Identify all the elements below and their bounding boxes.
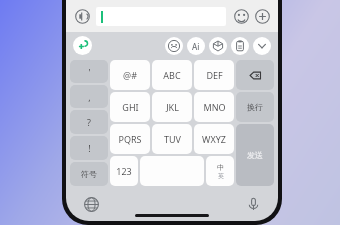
button[interactable]: 符号 bbox=[70, 162, 108, 186]
staticText: 英 bbox=[218, 172, 224, 180]
button[interactable]: @# bbox=[110, 60, 150, 90]
button[interactable]: Chinese English toggle bbox=[206, 156, 234, 186]
button[interactable]: Voice bbox=[74, 8, 90, 24]
button[interactable]: 3D bbox=[209, 37, 227, 55]
button[interactable]: ? bbox=[70, 110, 108, 134]
button[interactable]: Stickers bbox=[165, 37, 183, 55]
button[interactable]: Ai bbox=[187, 37, 205, 55]
staticText: TUV bbox=[164, 133, 181, 145]
staticText: ? bbox=[87, 116, 91, 128]
button[interactable]: , bbox=[70, 85, 108, 108]
staticText: DEF bbox=[206, 69, 223, 81]
staticText: Ai bbox=[192, 41, 200, 52]
staticText: PQRS bbox=[118, 133, 142, 145]
staticText: @# bbox=[123, 69, 137, 81]
button[interactable]: ABC bbox=[152, 60, 192, 90]
staticText: 123 bbox=[116, 165, 132, 177]
staticText: WXYZ bbox=[202, 133, 226, 145]
button[interactable]: 发送 bbox=[236, 124, 274, 186]
button[interactable]: Emoji bbox=[233, 8, 249, 24]
button[interactable]: Space bbox=[140, 156, 204, 186]
button[interactable]: More bbox=[254, 8, 270, 24]
staticText: , bbox=[88, 91, 91, 103]
button[interactable]: Switch language bbox=[80, 193, 102, 215]
staticText: 符号 bbox=[81, 169, 97, 179]
staticText: JKL bbox=[166, 101, 179, 113]
button[interactable]: Backspace bbox=[236, 60, 274, 90]
button[interactable]: JKL bbox=[152, 92, 192, 122]
staticText: 发送 bbox=[247, 150, 263, 160]
button[interactable]: WXYZ bbox=[194, 124, 234, 154]
button[interactable]: Voice input bbox=[242, 193, 264, 215]
button[interactable]: DEF bbox=[194, 60, 234, 90]
button[interactable] bbox=[96, 7, 226, 26]
button[interactable]: PQRS bbox=[110, 124, 150, 154]
button[interactable]: MNO bbox=[194, 92, 234, 122]
button[interactable]: Collapse keyboard bbox=[253, 37, 271, 55]
button[interactable]: 换行 bbox=[236, 92, 274, 122]
staticText: 中 bbox=[217, 163, 224, 172]
button[interactable]: ! bbox=[70, 136, 108, 160]
staticText: ABC bbox=[163, 69, 181, 81]
staticText: ' bbox=[88, 66, 91, 78]
button[interactable]: 123 bbox=[110, 156, 138, 186]
button[interactable]: ' bbox=[70, 60, 108, 83]
button[interactable]: TUV bbox=[152, 124, 192, 154]
staticText: ! bbox=[88, 142, 91, 154]
staticText: MNO bbox=[203, 101, 226, 113]
staticText: 换行 bbox=[247, 102, 263, 112]
staticText: GHI bbox=[122, 101, 139, 113]
button[interactable]: Input method logo bbox=[73, 36, 92, 55]
button[interactable]: GHI bbox=[110, 92, 150, 122]
button[interactable]: Clipboard bbox=[231, 37, 249, 55]
